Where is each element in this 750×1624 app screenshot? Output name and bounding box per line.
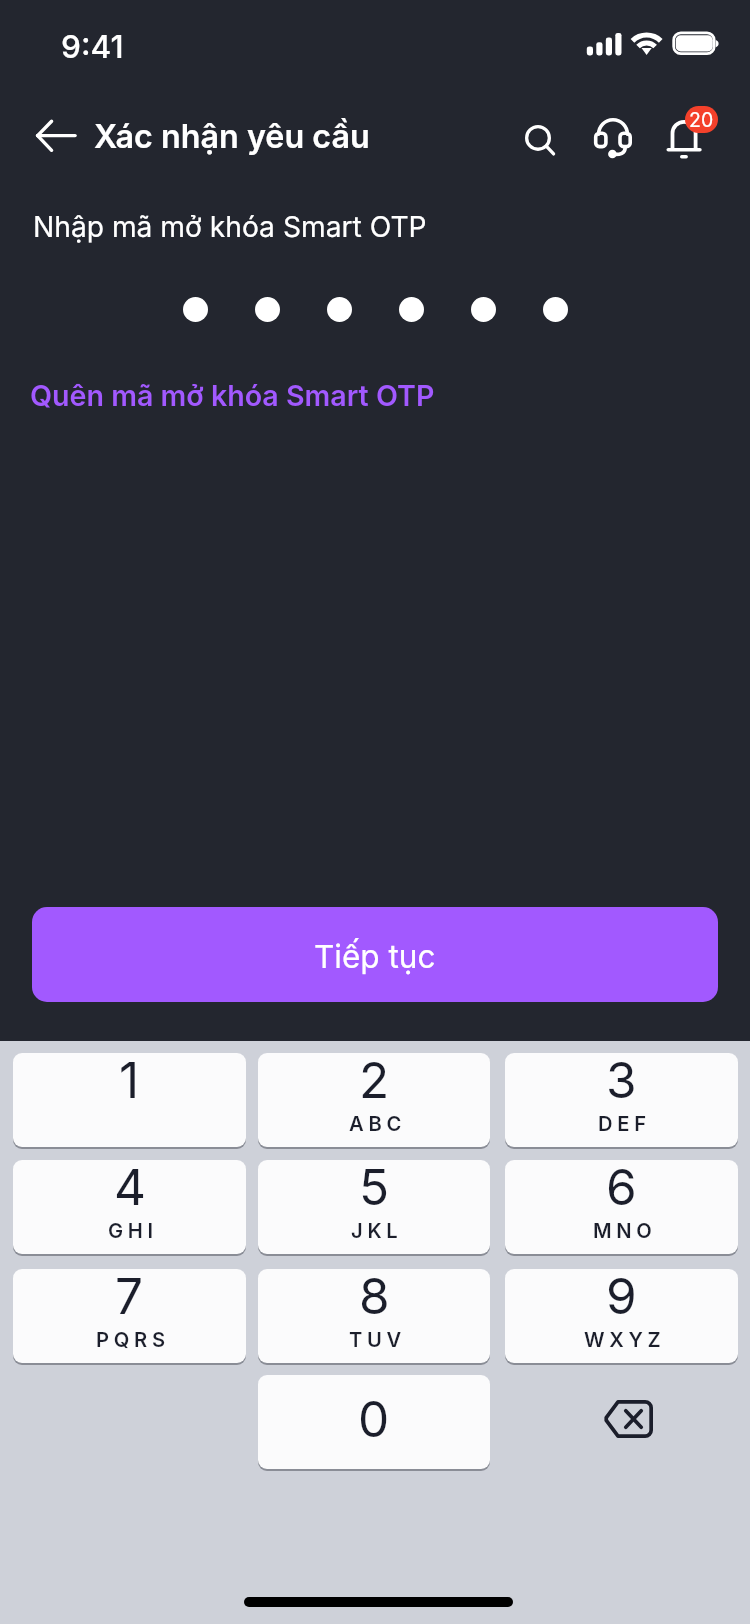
staticText: GHI: [108, 1218, 158, 1242]
button[interactable]: Tiếp tục: [32, 907, 718, 1002]
staticText: 20: [689, 108, 714, 132]
staticText: Tiếp tục: [314, 937, 436, 975]
staticText: WXYZ: [584, 1327, 666, 1351]
staticText: 4: [114, 1160, 146, 1217]
staticText: MNO: [593, 1218, 657, 1242]
staticText: Xác nhận yêu cầu: [94, 117, 370, 156]
button[interactable]: Notifications: [656, 104, 714, 162]
staticText: Quên mã mở khóa Smart OTP: [30, 378, 435, 413]
button[interactable]: Delete: [505, 1375, 738, 1469]
staticText: 9:41: [61, 27, 124, 65]
button[interactable]: 8: [258, 1269, 490, 1363]
staticText: PQRS: [96, 1327, 170, 1351]
button[interactable]: 4: [13, 1160, 246, 1254]
button[interactable]: Search: [511, 111, 567, 167]
button[interactable]: 9: [505, 1269, 738, 1363]
button[interactable]: 3: [505, 1053, 738, 1147]
button[interactable]: 5: [258, 1160, 490, 1254]
staticText: DEF: [598, 1111, 651, 1135]
staticText: Nhập mã mở khóa Smart OTP: [33, 210, 427, 244]
button[interactable]: 0: [258, 1375, 490, 1469]
staticText: 0: [358, 1389, 390, 1449]
staticText: 5: [359, 1160, 390, 1217]
staticText: ABC: [349, 1111, 406, 1135]
staticText: 8: [359, 1269, 390, 1326]
button[interactable]: Quên mã mở khóa Smart OTP: [30, 378, 435, 413]
button[interactable]: Customer support: [588, 112, 638, 162]
staticText: 3: [606, 1053, 637, 1110]
button[interactable]: 7: [13, 1269, 246, 1363]
button[interactable]: 1: [13, 1053, 246, 1147]
staticText: 9: [606, 1269, 637, 1326]
staticText: 2: [359, 1053, 390, 1110]
staticText: 6: [606, 1160, 637, 1217]
staticText: 1: [119, 1053, 140, 1110]
button[interactable]: Back: [19, 108, 77, 166]
button[interactable]: 6: [505, 1160, 738, 1254]
button[interactable]: 2: [258, 1053, 490, 1147]
staticText: 7: [115, 1269, 144, 1326]
staticText: JKL: [351, 1218, 403, 1242]
staticText: TUV: [349, 1327, 406, 1351]
